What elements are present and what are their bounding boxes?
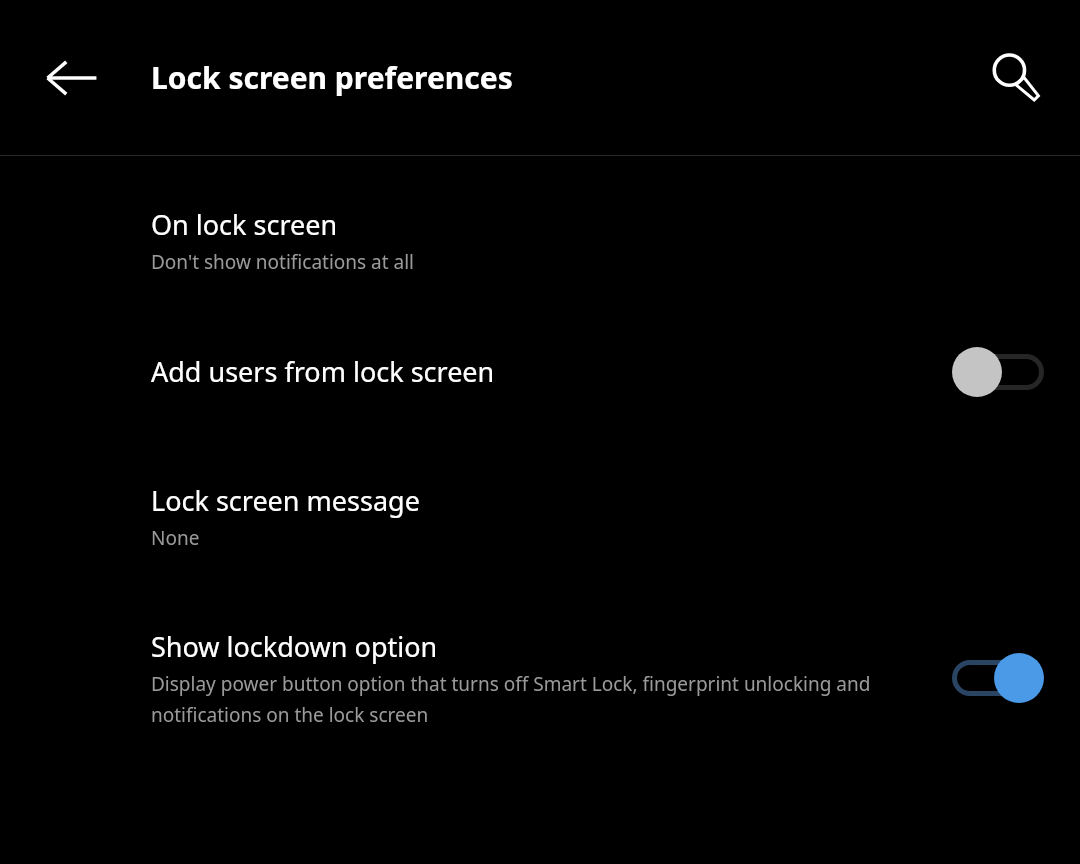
button[interactable]: On lock screen <box>0 180 1080 300</box>
button[interactable]: Search <box>972 35 1058 121</box>
staticText: Display power button option that turns o… <box>151 671 934 728</box>
staticText: Don't show notifications at all <box>151 249 414 275</box>
staticText: On lock screen <box>151 206 338 243</box>
staticText: None <box>151 525 200 551</box>
button[interactable]: Back <box>28 34 116 122</box>
staticText: Lock screen preferences <box>151 57 513 98</box>
staticText: Add users from lock screen <box>151 353 495 390</box>
button[interactable]: Show lockdown option <box>0 590 1080 765</box>
staticText: Show lockdown option <box>151 628 438 665</box>
staticText: Lock screen message <box>151 482 420 519</box>
button[interactable]: Add users from lock screen <box>0 300 1080 443</box>
button[interactable]: Toggle off <box>950 344 1046 400</box>
button[interactable]: Toggle on <box>950 650 1046 706</box>
button[interactable]: Lock screen message <box>0 443 1080 590</box>
